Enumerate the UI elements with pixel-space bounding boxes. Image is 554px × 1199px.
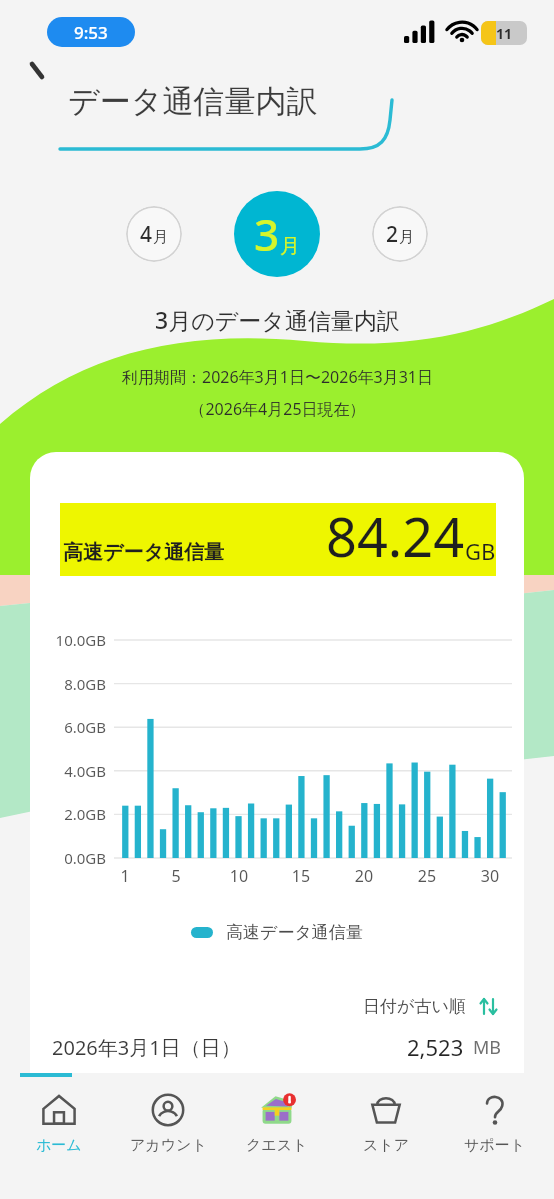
staticText: 9:53 (74, 21, 108, 44)
staticText: MB (473, 1035, 502, 1060)
staticText: 3 (254, 204, 280, 264)
staticText: 0.0GB (34, 848, 106, 868)
button[interactable]: ホーム (9, 1089, 109, 1157)
staticText: 5 (164, 865, 188, 887)
staticText: 4.0GB (34, 761, 106, 781)
staticText: 8.0GB (34, 674, 106, 694)
staticText: データ通信量内訳 (68, 82, 318, 121)
staticText: 2.0GB (34, 804, 106, 824)
staticText: 20 (352, 865, 376, 887)
staticText: （2026年4月25日現在） (189, 398, 366, 420)
button[interactable]: 日付が古い順 (359, 992, 502, 1021)
button[interactable]: 2026年3月1日（日） (30, 1032, 524, 1062)
staticText: アカウント (130, 1136, 207, 1155)
staticText: ストア (363, 1136, 410, 1155)
other: Change sort order (479, 997, 498, 1016)
staticText: 月 (399, 228, 414, 247)
staticText: 10.0GB (34, 630, 106, 650)
staticText: GB (465, 536, 496, 566)
button[interactable]: サポート (445, 1089, 545, 1157)
staticText: 高速データ通信量 (226, 922, 363, 943)
staticText: 高速データ通信量 (63, 540, 224, 565)
staticText: 25 (415, 865, 439, 887)
staticText: 日付が古い順 (363, 996, 466, 1017)
staticText: ホーム (36, 1136, 82, 1155)
button[interactable]: 2 (372, 206, 428, 262)
staticText: 84.24 (326, 499, 465, 572)
staticText: 4 (140, 220, 153, 249)
button[interactable]: アカウント (118, 1089, 218, 1157)
staticText: 6.0GB (34, 717, 106, 737)
staticText: 2026年3月1日（日） (52, 1034, 241, 1061)
button[interactable]: 3 (234, 191, 320, 277)
staticText: 2 (386, 220, 399, 249)
button[interactable]: クエスト (227, 1089, 327, 1157)
staticText: 月 (153, 228, 168, 247)
staticText: 11 (496, 24, 513, 43)
staticText: 1 (113, 865, 137, 887)
button[interactable]: 4 (126, 206, 182, 262)
staticText: 2,523 (407, 1032, 464, 1062)
staticText: 10 (227, 865, 251, 887)
staticText: クエスト (246, 1136, 308, 1155)
staticText: 月 (280, 234, 300, 259)
staticText: 15 (289, 865, 313, 887)
staticText: 利用期間：2026年3月1日〜2026年3月31日 (122, 366, 433, 388)
staticText: 30 (478, 865, 502, 887)
button[interactable]: 高速データ通信量 (30, 922, 524, 943)
staticText: サポート (464, 1136, 526, 1155)
button[interactable]: ストア (336, 1089, 436, 1157)
staticText: 3月のデータ通信量内訳 (155, 304, 400, 335)
